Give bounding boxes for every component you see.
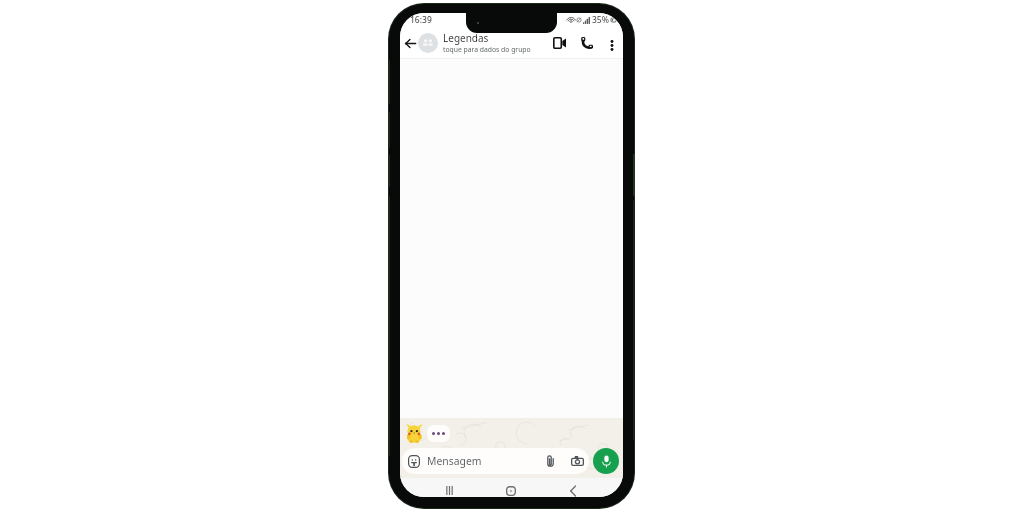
- button[interactable]: Voice call: [577, 36, 595, 54]
- button[interactable]: Back: [402, 37, 418, 53]
- button[interactable]: Legendas: [443, 33, 551, 56]
- button[interactable]: [418, 33, 438, 53]
- button[interactable]: Home: [480, 478, 542, 497]
- button[interactable]: Mensagem: [402, 448, 589, 474]
- button[interactable]: More options: [605, 38, 619, 52]
- button[interactable]: Record voice message: [593, 448, 619, 474]
- staticText: 16:39: [410, 14, 432, 26]
- staticText: toque para dados do grupo: [443, 45, 531, 54]
- button[interactable]: Video call: [551, 36, 569, 54]
- staticText: Legendas: [443, 31, 489, 45]
- staticText: 35%: [592, 14, 609, 26]
- button[interactable]: Recent apps: [419, 478, 480, 497]
- staticText: Mensagem: [427, 454, 546, 468]
- button[interactable]: Back: [542, 478, 604, 497]
